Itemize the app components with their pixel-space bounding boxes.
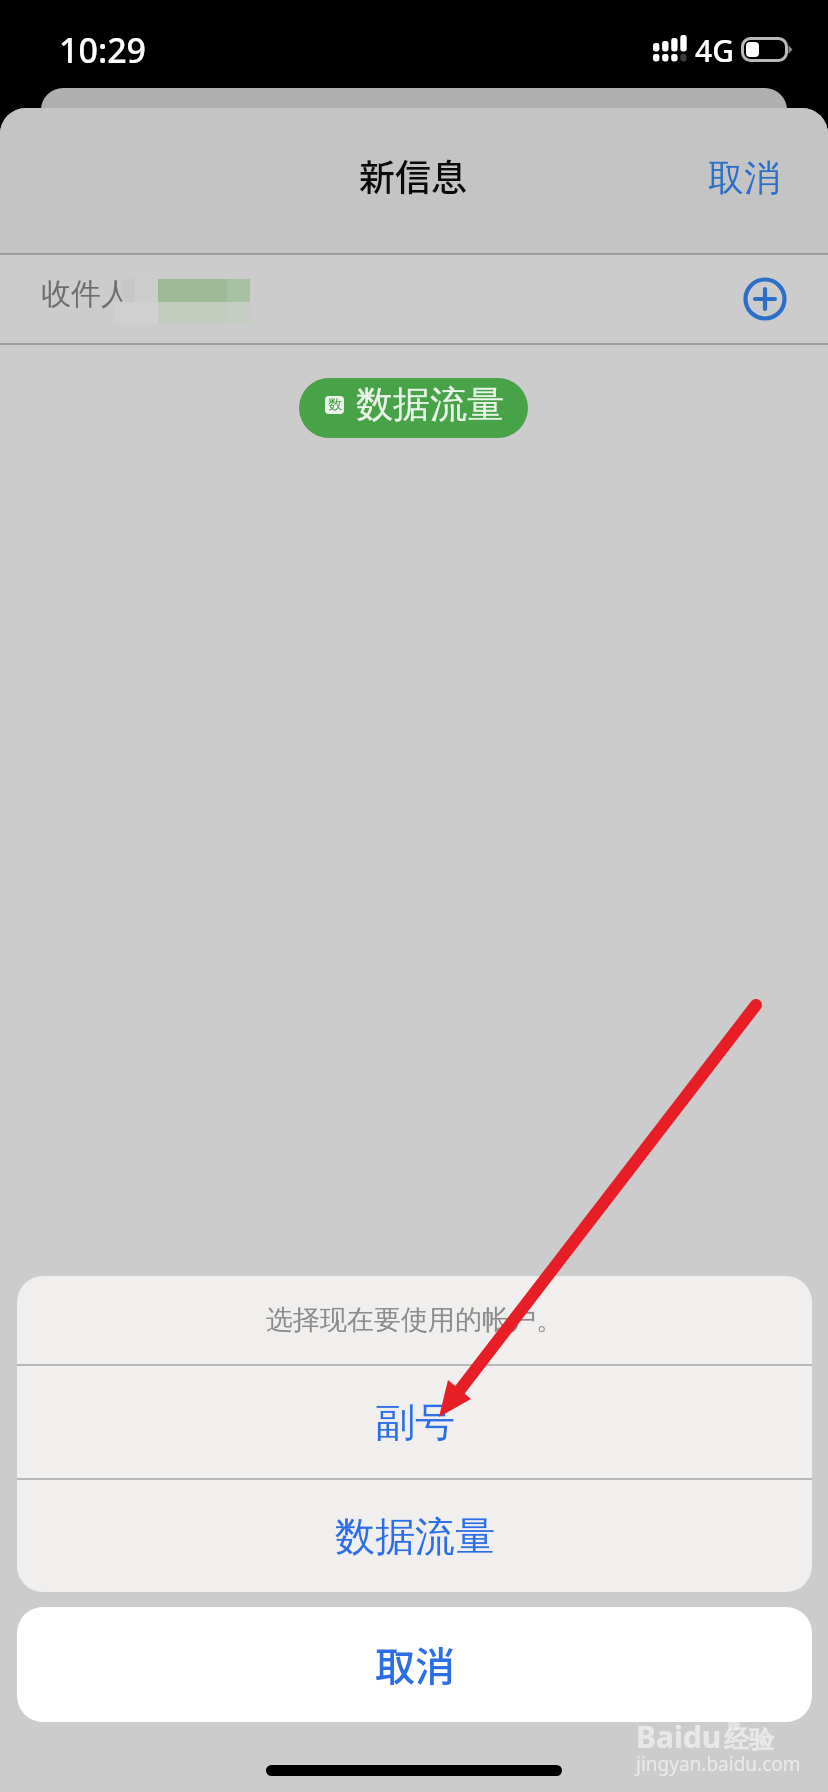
staticText: 取消 xyxy=(375,1635,455,1693)
staticText: 收件人 xyxy=(41,275,131,313)
staticText: Baidu xyxy=(636,1716,722,1757)
button[interactable]: 数据流量 xyxy=(17,1480,812,1592)
staticText: 选择现在要使用的帐户。 xyxy=(266,1303,563,1337)
button[interactable]: 取消 xyxy=(17,1607,812,1722)
button[interactable]: 副号 xyxy=(17,1366,812,1478)
staticText: jingyan.baidu.com xyxy=(636,1751,801,1777)
staticText: 取消 xyxy=(708,155,780,200)
button[interactable]: 数 xyxy=(299,378,528,438)
staticText: 4G xyxy=(695,30,734,71)
staticText: 数据流量 xyxy=(356,381,504,428)
staticText: 新信息 xyxy=(359,149,468,201)
staticText: 数 xyxy=(328,396,342,414)
staticText: 经验 xyxy=(724,1724,774,1755)
staticText: 10:29 xyxy=(59,27,147,73)
button[interactable]: 取消 xyxy=(684,141,804,214)
button[interactable]: Add contact xyxy=(736,270,794,328)
staticText: 副号 xyxy=(375,1397,455,1447)
staticText: 数据流量 xyxy=(335,1511,495,1561)
